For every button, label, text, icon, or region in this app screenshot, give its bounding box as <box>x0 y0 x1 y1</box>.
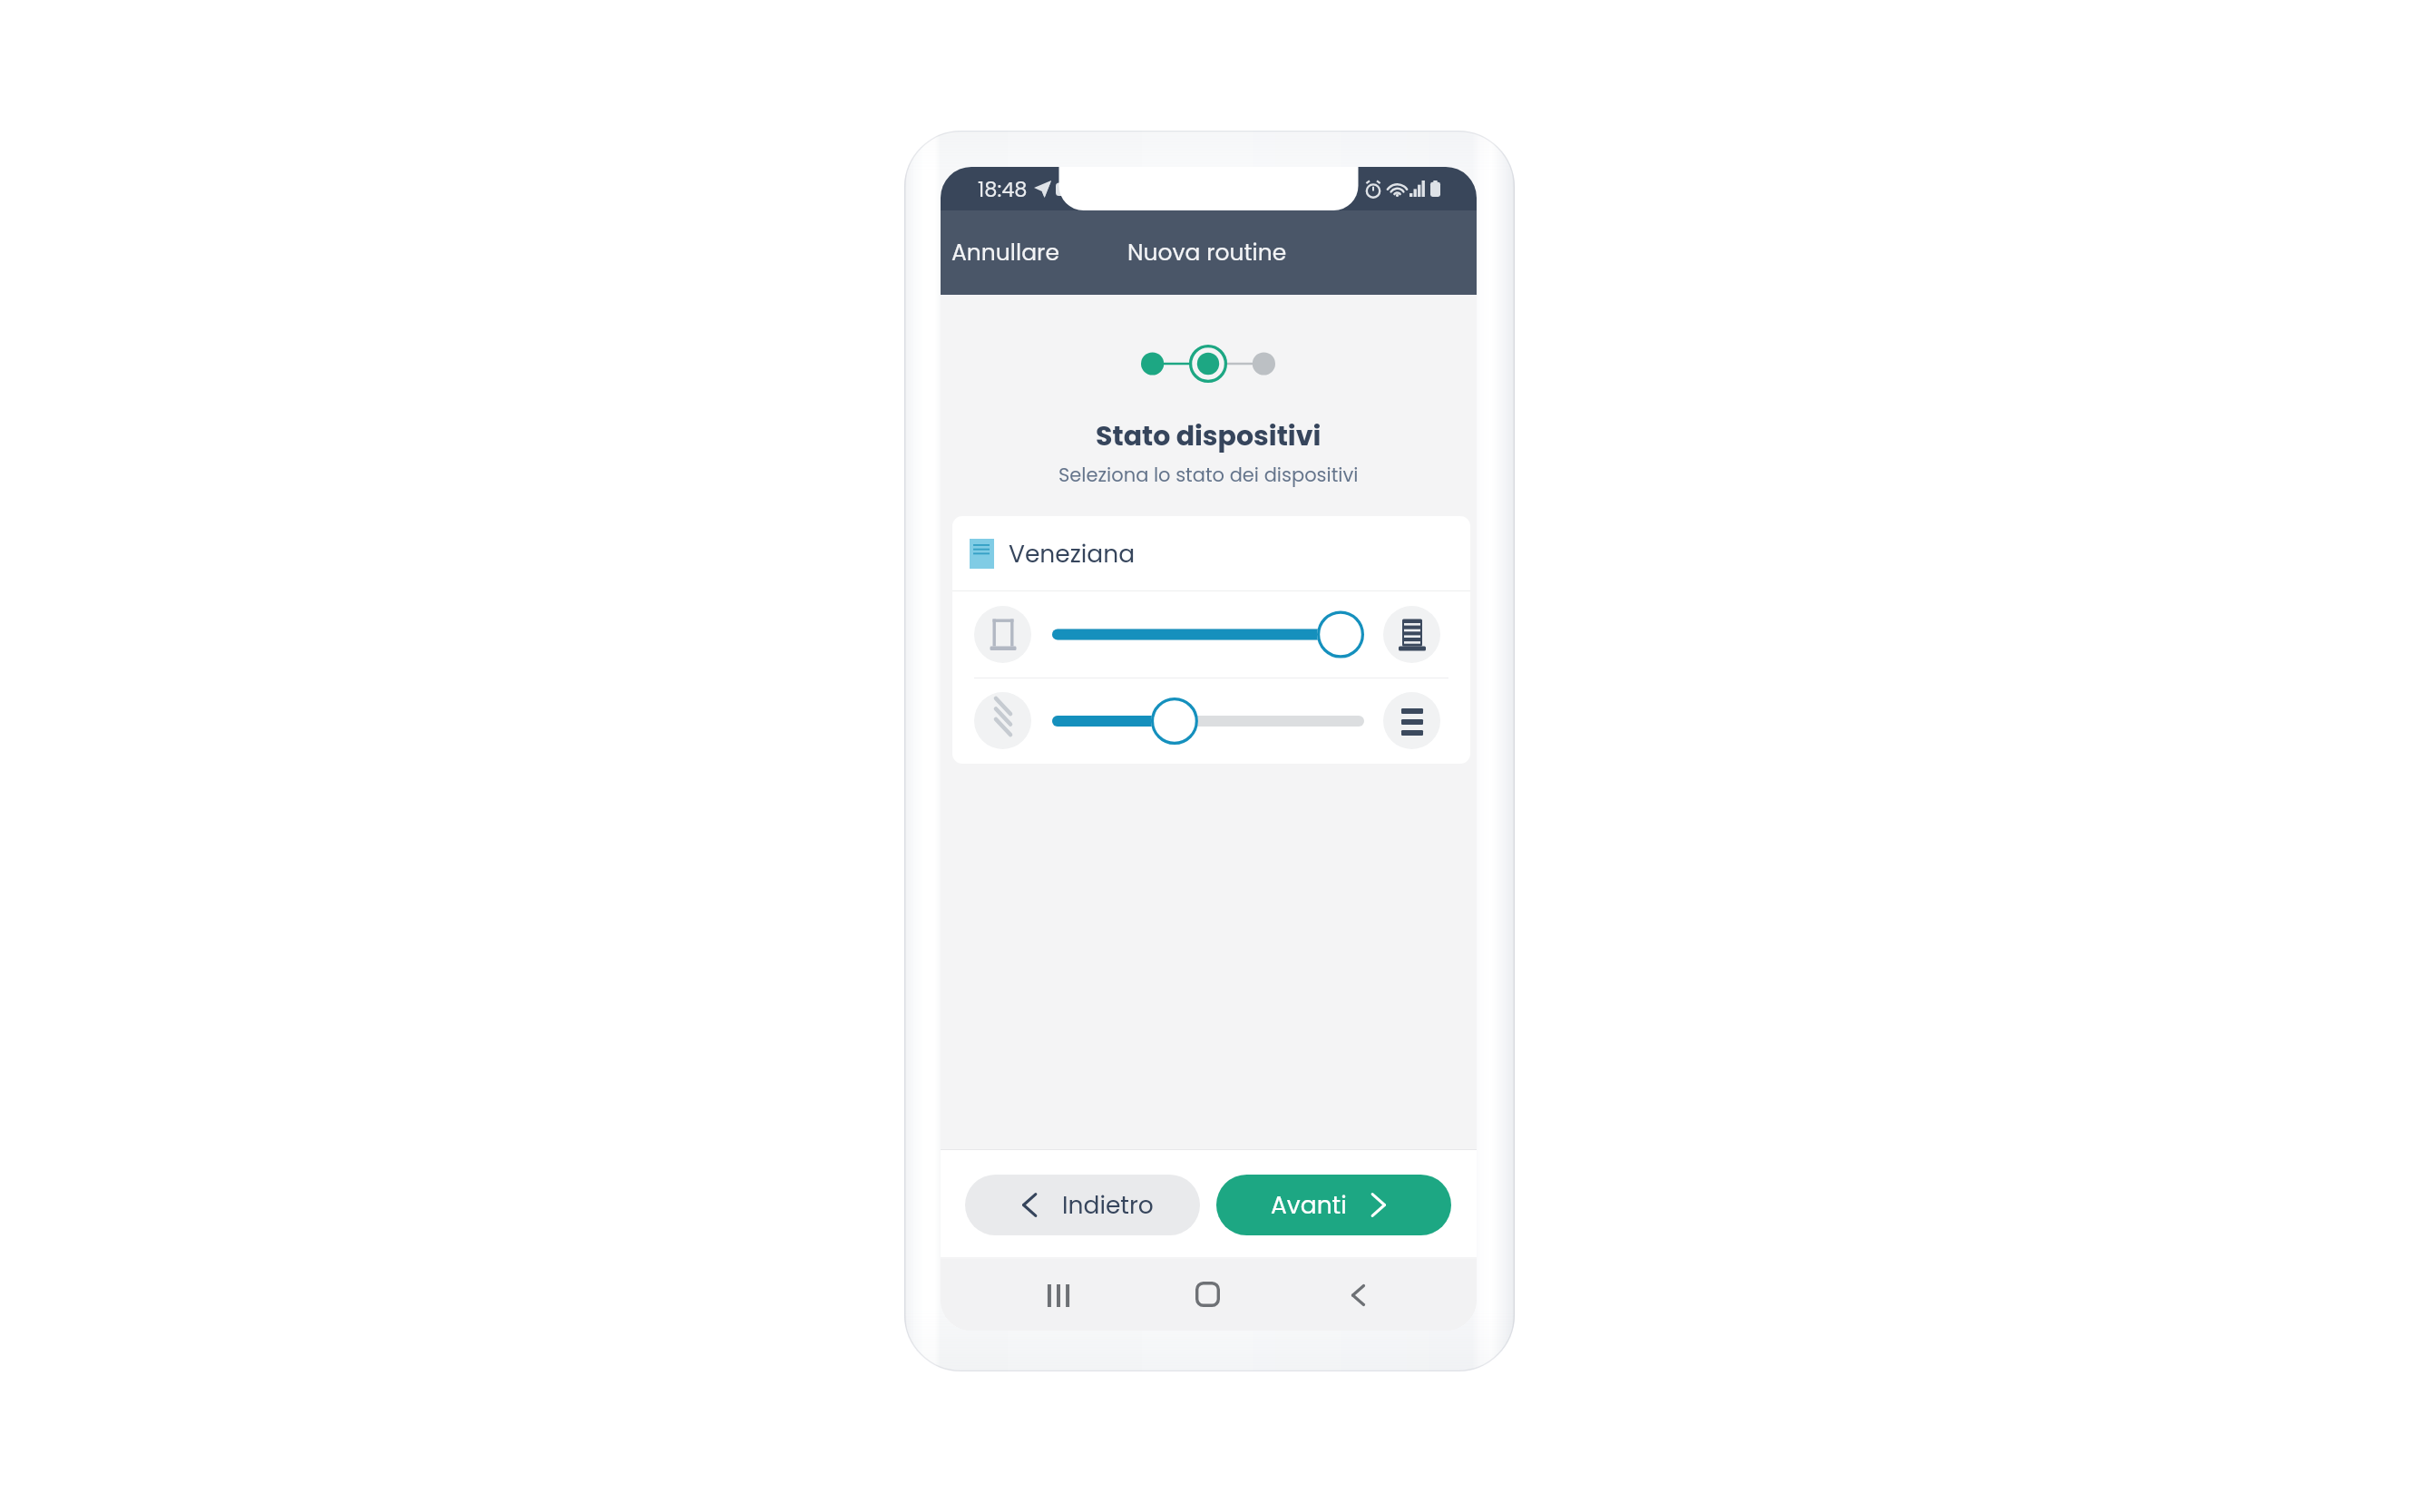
button[interactable]: Home <box>1180 1267 1234 1322</box>
button[interactable]: Indietro <box>1331 1268 1385 1322</box>
button[interactable]: Recenti <box>1031 1268 1086 1322</box>
staticText: Nuova routine <box>1127 237 1287 268</box>
staticText: Veneziana <box>1009 537 1136 571</box>
staticText: Annullare <box>951 237 1059 268</box>
button[interactable]: Avanti <box>1216 1175 1451 1235</box>
button[interactable]: Indietro <box>965 1175 1200 1235</box>
staticText: 18:48 <box>978 175 1028 203</box>
staticText: Avanti <box>1271 1188 1347 1222</box>
button[interactable]: Apri tapparella <box>1383 606 1440 663</box>
staticText: Stato dispositivi <box>1096 417 1322 455</box>
staticText: Seleziona lo stato dei dispositivi <box>1058 462 1359 488</box>
button[interactable]: Inclina lamelle <box>974 692 1031 749</box>
button[interactable]: Chiudi tapparella <box>974 606 1031 663</box>
button[interactable]: Lamelle aperte <box>1383 692 1440 749</box>
button[interactable]: Annullare <box>942 231 1068 274</box>
staticText: Indietro <box>1062 1188 1154 1222</box>
